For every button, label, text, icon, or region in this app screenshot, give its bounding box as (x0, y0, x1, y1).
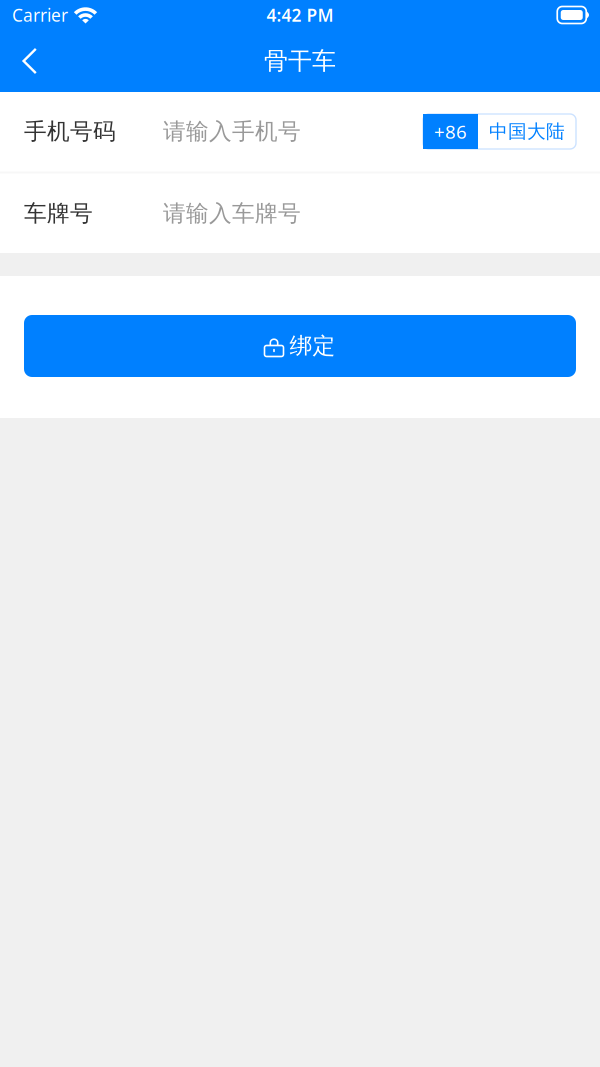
staticText: 手机号码 (24, 118, 116, 145)
button[interactable]: +86 (423, 114, 576, 149)
staticText: 骨干车 (264, 46, 336, 76)
staticText: 绑定 (289, 332, 335, 360)
staticText: 中国大陆 (489, 120, 565, 143)
staticText: 车牌号 (24, 200, 93, 227)
staticText: 请输入手机号 (163, 118, 301, 145)
button[interactable]: Back (0, 34, 55, 87)
button[interactable]: 绑定 (24, 315, 576, 377)
staticText: 4:42 PM (266, 3, 333, 26)
staticText: Carrier (12, 3, 68, 26)
staticText: +86 (434, 119, 467, 144)
staticText: 请输入车牌号 (163, 200, 301, 227)
